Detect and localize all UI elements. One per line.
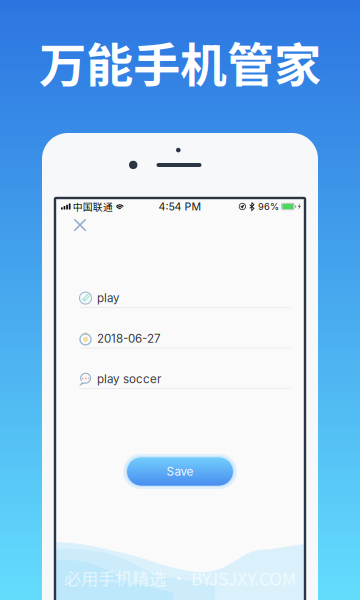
button[interactable]: 2018-06-27 — [79, 330, 291, 348]
staticText: 2018-06-27 — [97, 332, 161, 346]
button[interactable]: play — [79, 289, 291, 308]
staticText: 万能手机管家 — [39, 28, 321, 96]
staticText: Save — [166, 464, 193, 479]
staticText: 96% — [258, 201, 279, 212]
staticText: 4:54 PM — [158, 200, 201, 213]
staticText: 中国联通 — [73, 199, 113, 214]
button[interactable]: Close — [67, 212, 93, 238]
button[interactable]: play soccer — [79, 370, 291, 389]
staticText: play soccer — [97, 372, 161, 386]
button[interactable]: Save — [122, 453, 238, 490]
staticText: 必用手机精选 · BYJSJXY.COM — [64, 565, 296, 591]
staticText: play — [97, 291, 120, 305]
